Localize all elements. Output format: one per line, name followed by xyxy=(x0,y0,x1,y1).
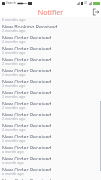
button[interactable]: 6 months ago xyxy=(0,17,101,28)
staticText: 2 months ago xyxy=(2,127,26,132)
staticText: New Booking Received xyxy=(2,23,58,28)
staticText: 6 months ago xyxy=(2,17,26,22)
staticText: New Order Received xyxy=(2,144,52,149)
button[interactable]: 2 months ago xyxy=(0,83,101,94)
button[interactable]: 2 months ago xyxy=(0,94,101,105)
staticText: a month ago xyxy=(2,171,24,176)
staticText: 2 months ago xyxy=(2,83,26,88)
staticText: New Order Received xyxy=(2,56,52,61)
staticText: New Order Received xyxy=(2,166,52,171)
staticText: New Order Received xyxy=(2,177,52,180)
staticText: New Order Received xyxy=(2,89,52,94)
staticText: 41 xyxy=(84,1,88,5)
staticText: 2 months ago xyxy=(2,94,26,99)
button[interactable]: 2 months ago xyxy=(0,61,101,72)
staticText: a month ago xyxy=(2,160,24,165)
button[interactable]: a month ago xyxy=(0,149,101,160)
button[interactable]: a month ago xyxy=(0,160,101,171)
staticText: New Order Received xyxy=(2,155,52,160)
staticText: New Order Received xyxy=(2,34,52,39)
staticText: New Order Received xyxy=(2,45,52,50)
button[interactable]: 2 months ago xyxy=(0,39,101,50)
staticText: a month ago xyxy=(2,149,24,154)
staticText: 2 months ago xyxy=(2,105,26,110)
staticText: 2 months ago xyxy=(2,39,26,44)
button[interactable]: 2 months ago xyxy=(0,28,101,39)
staticText: New Order Received xyxy=(2,100,52,105)
button[interactable]: 2 months ago xyxy=(0,127,101,138)
staticText: New Order Received xyxy=(2,67,52,72)
button[interactable]: Log out xyxy=(91,7,101,17)
staticText: 2 months ago xyxy=(2,72,26,77)
staticText: New Order Received xyxy=(2,133,52,138)
button[interactable]: 2 months ago xyxy=(0,138,101,149)
staticText: 2 months ago xyxy=(2,61,26,66)
staticText: New Order Received xyxy=(2,111,52,116)
staticText: 2 months ago xyxy=(2,50,26,55)
staticText: Notifier xyxy=(0,7,101,17)
button[interactable]: 2 months ago xyxy=(0,116,101,127)
staticText: New Order Received xyxy=(2,78,52,83)
staticText: New Order Received xyxy=(2,122,52,127)
staticText: Search xyxy=(6,1,17,5)
button[interactable]: 2 months ago xyxy=(0,72,101,83)
button[interactable]: 2 months ago xyxy=(0,50,101,61)
button[interactable]: 2 months ago xyxy=(0,105,101,116)
button[interactable]: a month ago xyxy=(0,171,101,180)
staticText: 2 months ago xyxy=(2,116,26,121)
staticText: 2 months ago xyxy=(2,28,26,33)
staticText: 2 months ago xyxy=(2,138,26,143)
